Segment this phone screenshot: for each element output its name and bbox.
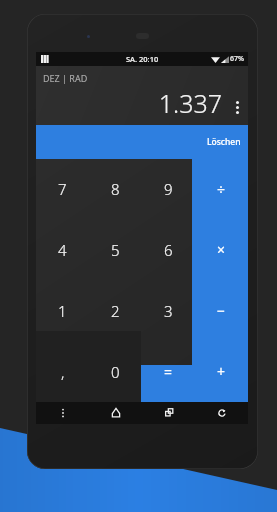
staticText: ÷	[217, 180, 226, 199]
button[interactable]: Back	[195, 402, 248, 424]
button[interactable]: −	[195, 280, 248, 341]
button[interactable]: 2	[89, 280, 142, 341]
staticText: 7	[58, 179, 67, 199]
button[interactable]: =	[142, 341, 195, 402]
staticText: 1	[58, 301, 67, 321]
staticText: 6	[164, 240, 173, 260]
button[interactable]: ,	[36, 341, 89, 402]
staticText: +	[217, 362, 226, 381]
button[interactable]: 1	[36, 280, 89, 341]
button[interactable]: 9	[142, 159, 195, 219]
button[interactable]: More options	[230, 97, 244, 117]
button[interactable]: Menu	[36, 402, 89, 424]
staticText: 67%	[230, 54, 244, 64]
button[interactable]: +	[195, 341, 248, 402]
button[interactable]: 5	[89, 219, 142, 280]
button[interactable]: Home	[89, 402, 142, 424]
button[interactable]: 3	[142, 280, 195, 341]
staticText: 0	[111, 362, 120, 382]
staticText: 9	[164, 179, 173, 199]
button[interactable]: 7	[36, 159, 89, 219]
staticText: ×	[217, 240, 226, 259]
button[interactable]: ×	[195, 219, 248, 280]
staticText: 4	[58, 240, 67, 260]
staticText: 8	[111, 179, 120, 199]
button[interactable]: DEZ | RAD	[43, 72, 88, 84]
button[interactable]: 6	[142, 219, 195, 280]
button[interactable]: 4	[36, 219, 89, 280]
button[interactable]: ÷	[195, 159, 248, 219]
button[interactable]: 0	[89, 341, 142, 402]
button[interactable]: Löschen	[36, 125, 248, 159]
staticText: ,	[61, 362, 65, 382]
staticText: 5	[111, 240, 120, 260]
staticText: SA. 20:10	[126, 54, 159, 64]
staticText: 1.337	[158, 86, 222, 120]
staticText: Löschen	[207, 136, 241, 148]
staticText: 2	[111, 301, 120, 321]
staticText: 3	[164, 301, 173, 321]
staticText: −	[217, 301, 226, 320]
staticText: =	[164, 362, 173, 381]
button[interactable]: Recent apps	[142, 402, 195, 424]
button[interactable]: 8	[89, 159, 142, 219]
